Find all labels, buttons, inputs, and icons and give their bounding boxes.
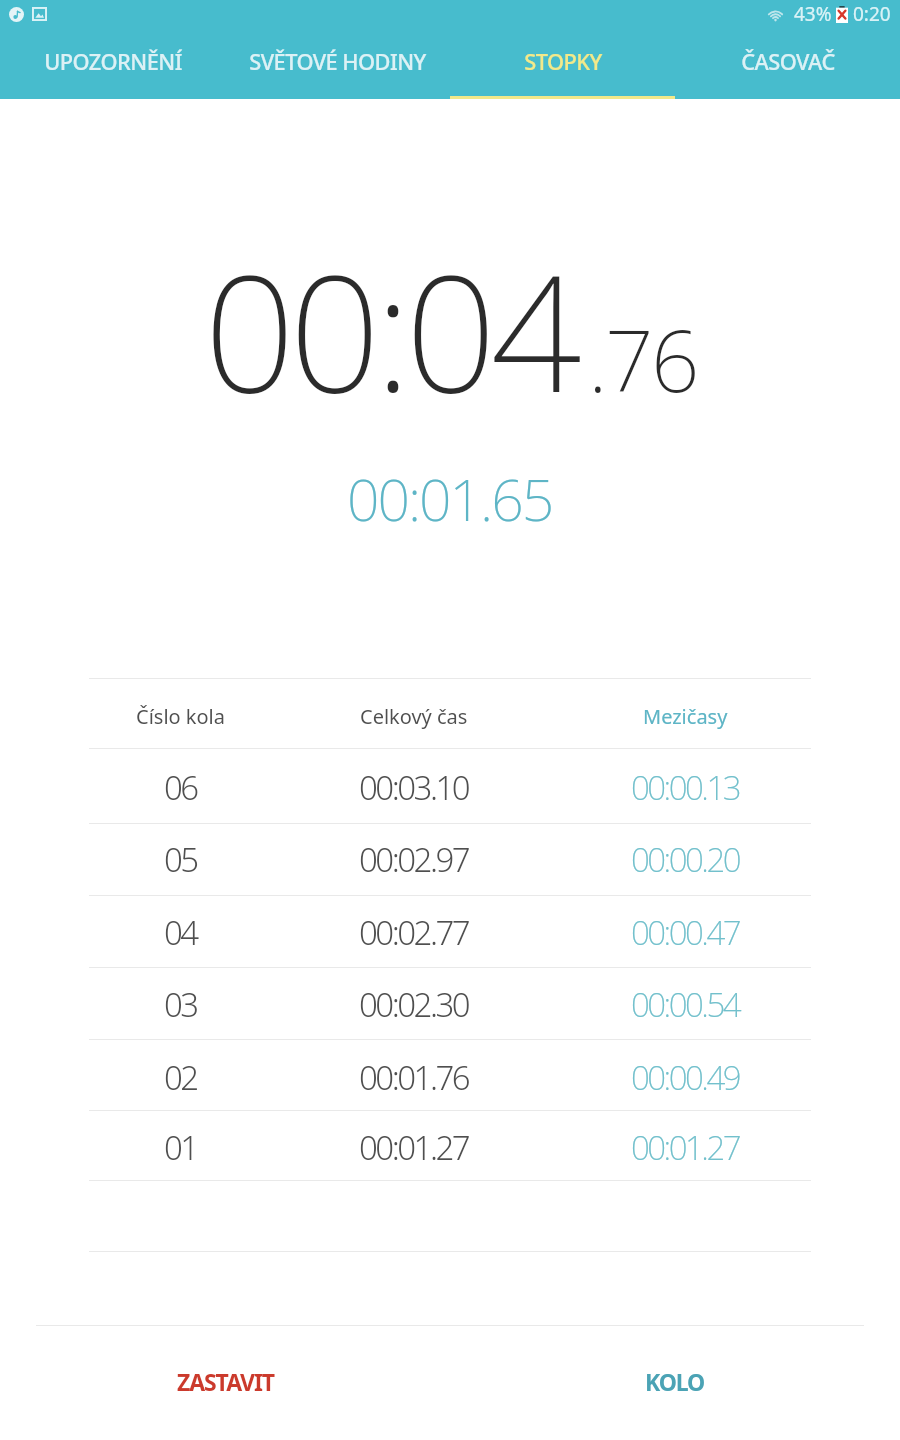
- staticText: 00:01.27: [631, 1125, 740, 1170]
- button[interactable]: 05: [89, 824, 811, 895]
- staticText: 02: [164, 1055, 197, 1100]
- staticText: 06: [164, 765, 197, 810]
- staticText: 04: [164, 910, 197, 955]
- staticText: STOPKY: [524, 47, 602, 77]
- staticText: SVĚTOVÉ HODINY: [249, 47, 426, 77]
- button[interactable]: KOLO: [450, 1326, 900, 1440]
- staticText: .76: [588, 301, 697, 417]
- button[interactable]: ZASTAVIT: [0, 1326, 450, 1440]
- button[interactable]: STOPKY: [450, 34, 675, 99]
- button[interactable]: 02: [89, 1040, 811, 1110]
- staticText: 00:03.10: [359, 765, 469, 810]
- staticText: UPOZORNĚNÍ: [44, 47, 182, 77]
- staticText: ČASOVAČ: [741, 47, 835, 77]
- staticText: 01: [164, 1125, 197, 1170]
- staticText: 00:00.49: [631, 1055, 740, 1100]
- staticText: 0:20: [853, 1, 891, 27]
- staticText: 00:04: [204, 221, 576, 439]
- staticText: 00:01.76: [359, 1055, 469, 1100]
- button[interactable]: SVĚTOVÉ HODINY: [225, 34, 450, 99]
- staticText: Číslo kola: [136, 703, 225, 730]
- staticText: 05: [164, 837, 197, 882]
- other: Wi-Fi: [767, 7, 784, 21]
- staticText: 00:02.97: [359, 837, 469, 882]
- staticText: 00:00.20: [631, 837, 740, 882]
- staticText: 00:02.30: [359, 982, 469, 1027]
- other: Battery low: [836, 6, 848, 23]
- button[interactable]: ČASOVAČ: [675, 34, 900, 99]
- staticText: 43%: [794, 1, 832, 27]
- button[interactable]: 06: [89, 749, 811, 823]
- other: Music player: [9, 7, 24, 22]
- staticText: ZASTAVIT: [177, 1366, 274, 1397]
- staticText: 00:01.27: [359, 1125, 469, 1170]
- staticText: 00:00.54: [631, 982, 740, 1027]
- staticText: 00:00.13: [631, 765, 740, 810]
- staticText: 00:02.77: [359, 910, 469, 955]
- button[interactable]: 03: [89, 968, 811, 1039]
- staticText: 03: [164, 982, 197, 1027]
- button[interactable]: 01: [89, 1111, 811, 1180]
- button[interactable]: 04: [89, 896, 811, 967]
- staticText: KOLO: [645, 1366, 705, 1397]
- staticText: 00:01.65: [347, 460, 553, 538]
- staticText: Celkový čas: [360, 703, 468, 730]
- staticText: Mezičasy: [643, 703, 728, 730]
- button[interactable]: UPOZORNĚNÍ: [0, 34, 225, 99]
- other: Screenshot saved: [32, 7, 47, 21]
- staticText: 00:00.47: [631, 910, 740, 955]
